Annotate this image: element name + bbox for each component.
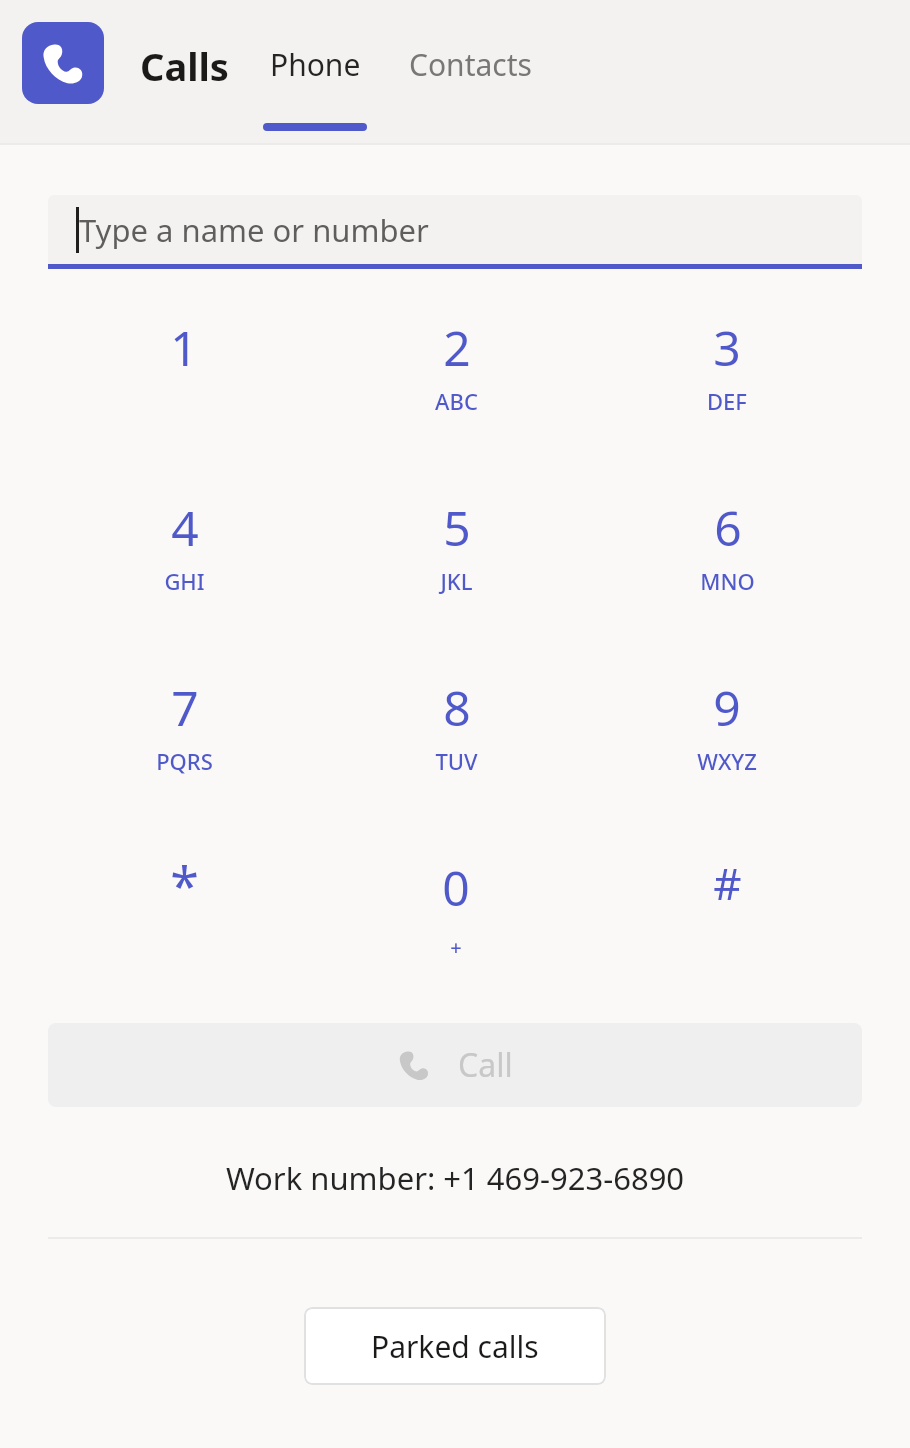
staticText: 1 xyxy=(170,315,198,380)
button[interactable]: 9 xyxy=(622,657,832,837)
staticText: 5 xyxy=(443,495,471,560)
button[interactable]: * xyxy=(79,837,289,1017)
staticText: PQRS xyxy=(156,746,213,776)
staticText: 3 xyxy=(713,315,741,380)
staticText: WXYZ xyxy=(697,746,757,776)
staticText: Call xyxy=(458,1043,513,1087)
staticText: 2 xyxy=(443,315,471,380)
staticText: + xyxy=(450,934,462,961)
button[interactable]: Calls app xyxy=(22,22,104,104)
staticText: Type a name or number xyxy=(79,209,429,251)
button[interactable]: 5 xyxy=(351,477,561,657)
button[interactable]: # xyxy=(622,837,832,1017)
staticText: 7 xyxy=(171,675,199,740)
staticText: Calls xyxy=(140,40,229,92)
staticText: TUV xyxy=(435,746,478,776)
staticText: * xyxy=(170,849,199,920)
staticText: Contacts xyxy=(409,44,532,85)
staticText: Phone xyxy=(270,44,361,85)
button[interactable]: Phone xyxy=(263,44,367,131)
staticText: 4 xyxy=(171,495,199,560)
staticText: 9 xyxy=(713,675,741,740)
staticText: Work number: +1 469-923-6890 xyxy=(0,1157,910,1199)
button[interactable]: 7 xyxy=(79,657,289,837)
button[interactable]: 1 xyxy=(79,297,289,477)
button[interactable]: Contacts xyxy=(409,44,532,85)
staticText: MNO xyxy=(700,566,755,596)
staticText: 6 xyxy=(714,495,742,560)
staticText: JKL xyxy=(440,566,473,596)
staticText: # xyxy=(713,853,742,913)
staticText: ABC xyxy=(435,386,478,416)
staticText: 8 xyxy=(443,675,471,740)
button[interactable]: 2 xyxy=(351,297,561,477)
button[interactable]: 6 xyxy=(622,477,832,657)
button[interactable]: Type a name or number xyxy=(48,195,862,269)
staticText: Parked calls xyxy=(371,1326,539,1367)
button[interactable]: Call xyxy=(48,1023,862,1107)
staticText: DEF xyxy=(707,386,747,416)
button[interactable]: 4 xyxy=(79,477,289,657)
button[interactable]: 3 xyxy=(622,297,832,477)
button[interactable]: Parked calls xyxy=(304,1307,606,1385)
button[interactable]: 0 xyxy=(351,837,561,1017)
staticText: 0 xyxy=(442,855,470,920)
staticText: GHI xyxy=(164,566,205,596)
button[interactable]: 8 xyxy=(351,657,561,837)
